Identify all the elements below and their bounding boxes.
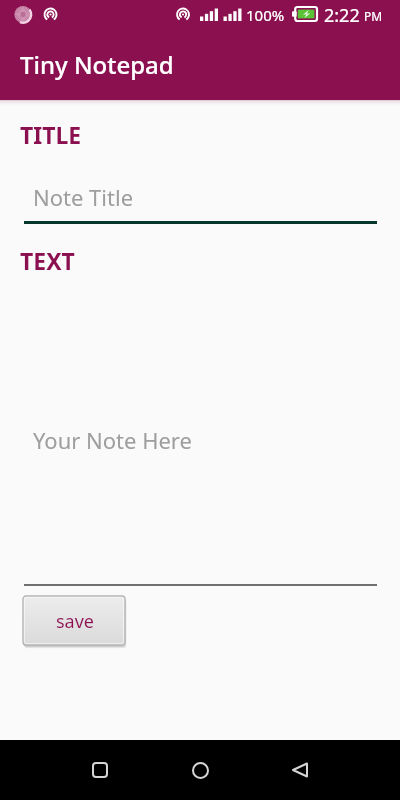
button[interactable]: Home — [176, 746, 224, 794]
staticText: TITLE — [20, 119, 82, 150]
staticText: TEXT — [20, 245, 75, 276]
staticText: Note Title — [33, 182, 134, 212]
staticText: 2:22 — [324, 3, 360, 28]
staticText: save — [56, 609, 95, 634]
staticText: 100% — [246, 5, 285, 25]
button[interactable]: Back — [276, 746, 324, 794]
button[interactable]: Your Note Here — [24, 286, 377, 586]
button[interactable]: Recent apps — [76, 746, 124, 794]
button[interactable]: save — [22, 595, 128, 649]
staticText: PM — [364, 8, 383, 24]
staticText: Your Note Here — [33, 425, 192, 455]
button[interactable]: Note Title — [24, 168, 377, 224]
staticText: Tiny Notepad — [20, 48, 174, 81]
